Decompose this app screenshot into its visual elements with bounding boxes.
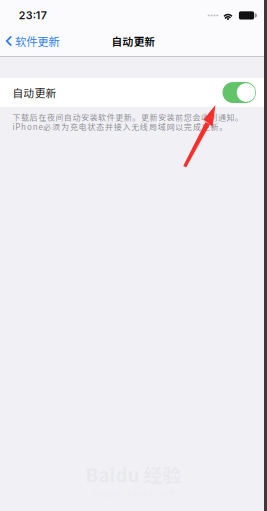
staticText: 下载后在夜间自动安装软件更新。更新安装前您会收到通知。 [12,111,243,123]
staticText: 软件更新 [15,33,59,49]
staticText: iPhone必须为充电状态并接入无线局域网以完成更新。 [12,121,227,132]
staticText: 23:17 [19,9,47,22]
staticText: Baidu 经验 [85,461,181,488]
button[interactable]: 软件更新 [0,26,65,56]
staticText: 自动更新 [12,85,56,100]
button[interactable]: 自动更新 [222,82,256,103]
staticText: 自动更新 [111,33,155,49]
